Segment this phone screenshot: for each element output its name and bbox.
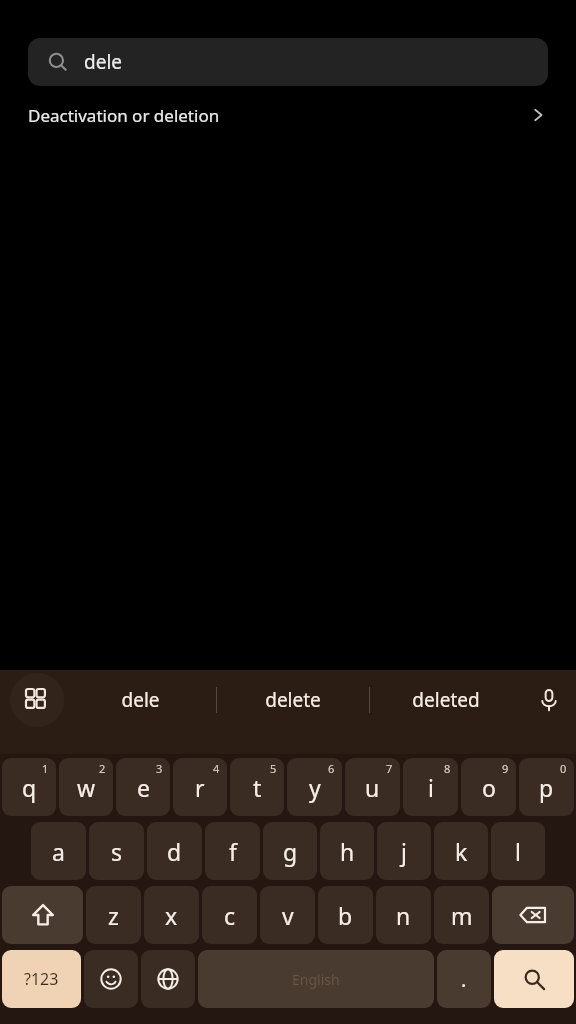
- button[interactable]: dele: [64, 670, 216, 730]
- button[interactable]: t: [230, 758, 284, 816]
- staticText: q: [22, 772, 37, 803]
- staticText: t: [253, 772, 262, 803]
- staticText: p: [539, 772, 554, 803]
- staticText: 3: [156, 761, 163, 776]
- staticText: r: [195, 772, 205, 803]
- staticText: w: [77, 772, 96, 803]
- staticText: c: [224, 900, 236, 931]
- staticText: 5: [270, 761, 277, 776]
- staticText: dele: [84, 49, 123, 75]
- button[interactable]: Backspace: [492, 886, 574, 944]
- staticText: b: [338, 900, 353, 931]
- staticText: 7: [386, 761, 393, 776]
- staticText: ?123: [24, 968, 59, 990]
- button[interactable]: o: [461, 758, 516, 816]
- button[interactable]: Voice input: [522, 670, 576, 730]
- staticText: Deactivation or deletion: [28, 104, 220, 127]
- staticText: 9: [502, 761, 509, 776]
- staticText: x: [165, 900, 178, 931]
- button[interactable]: y: [287, 758, 342, 816]
- button[interactable]: s: [89, 822, 144, 880]
- staticText: d: [167, 836, 182, 867]
- staticText: g: [283, 836, 298, 867]
- button[interactable]: f: [205, 822, 260, 880]
- staticText: e: [137, 772, 150, 803]
- staticText: k: [455, 836, 468, 867]
- button[interactable]: a: [31, 822, 86, 880]
- button[interactable]: q: [2, 758, 56, 816]
- button[interactable]: dele: [28, 38, 548, 86]
- staticText: delete: [265, 687, 321, 713]
- button[interactable]: v: [260, 886, 315, 944]
- button[interactable]: g: [263, 822, 317, 880]
- button[interactable]: delete: [217, 670, 369, 730]
- button[interactable]: Emoji: [84, 950, 138, 1008]
- button[interactable]: Shift: [2, 886, 83, 944]
- button[interactable]: n: [376, 886, 431, 944]
- staticText: l: [515, 836, 521, 867]
- button[interactable]: d: [147, 822, 202, 880]
- button[interactable]: e: [116, 758, 170, 816]
- staticText: English: [292, 970, 340, 989]
- button[interactable]: Search: [494, 950, 574, 1008]
- staticText: .: [461, 966, 467, 993]
- staticText: s: [111, 836, 123, 867]
- button[interactable]: Deactivation or deletion: [0, 86, 576, 144]
- button[interactable]: r: [173, 758, 227, 816]
- staticText: 1: [42, 761, 49, 776]
- button[interactable]: .: [437, 950, 491, 1008]
- button[interactable]: w: [59, 758, 113, 816]
- staticText: y: [309, 772, 321, 803]
- button[interactable]: h: [320, 822, 374, 880]
- staticText: o: [482, 772, 496, 803]
- button[interactable]: ?123: [2, 950, 81, 1008]
- staticText: 8: [444, 761, 451, 776]
- button[interactable]: c: [202, 886, 257, 944]
- staticText: z: [108, 900, 119, 931]
- staticText: h: [340, 836, 355, 867]
- button[interactable]: i: [403, 758, 458, 816]
- button[interactable]: m: [434, 886, 489, 944]
- button[interactable]: u: [345, 758, 400, 816]
- staticText: 4: [213, 761, 220, 776]
- button[interactable]: b: [318, 886, 373, 944]
- button[interactable]: x: [144, 886, 199, 944]
- staticText: a: [52, 836, 65, 867]
- button[interactable]: z: [86, 886, 141, 944]
- staticText: f: [229, 836, 237, 867]
- button[interactable]: Space: [198, 950, 434, 1008]
- staticText: u: [365, 772, 380, 803]
- button[interactable]: j: [377, 822, 431, 880]
- staticText: dele: [121, 687, 160, 713]
- button[interactable]: l: [491, 822, 545, 880]
- staticText: 0: [560, 761, 567, 776]
- staticText: 2: [99, 761, 106, 776]
- staticText: n: [396, 900, 411, 931]
- button[interactable]: deleted: [370, 670, 522, 730]
- staticText: deleted: [412, 687, 480, 713]
- staticText: i: [428, 772, 434, 803]
- button[interactable]: Toolbar: [10, 673, 64, 727]
- staticText: 6: [328, 761, 335, 776]
- staticText: v: [282, 900, 294, 931]
- button[interactable]: k: [434, 822, 488, 880]
- staticText: m: [451, 900, 473, 931]
- button[interactable]: p: [519, 758, 574, 816]
- staticText: j: [401, 836, 407, 867]
- button[interactable]: Change language: [141, 950, 195, 1008]
